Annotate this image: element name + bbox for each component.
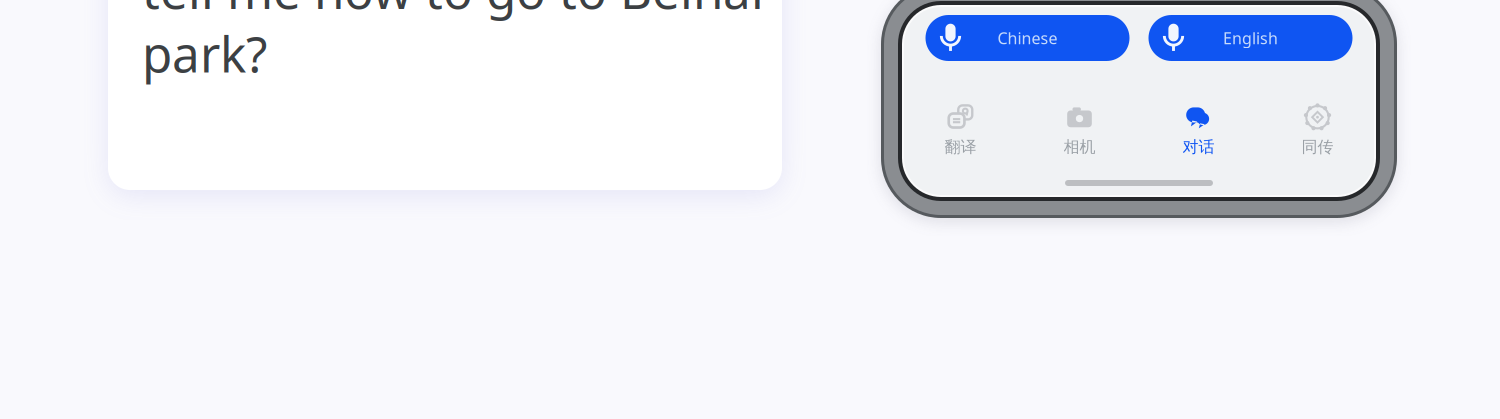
button[interactable]: 对话 [1139, 104, 1258, 156]
staticText: 对话 [1182, 137, 1214, 157]
button[interactable]: 相机 [1020, 104, 1139, 156]
staticText: 翻译 [944, 137, 976, 157]
staticText: park? [142, 20, 267, 86]
button[interactable]: Chinese [925, 15, 1129, 61]
staticText: 相机 [1063, 137, 1095, 157]
staticText: English [1223, 27, 1278, 49]
staticText: Chinese [997, 27, 1057, 49]
button[interactable]: 同传 [1258, 104, 1377, 156]
button[interactable]: English [1148, 15, 1352, 61]
button[interactable]: 翻译 [901, 104, 1020, 156]
staticText: 同传 [1301, 137, 1333, 157]
staticText: tell me how to go to Beihai [142, 0, 764, 22]
